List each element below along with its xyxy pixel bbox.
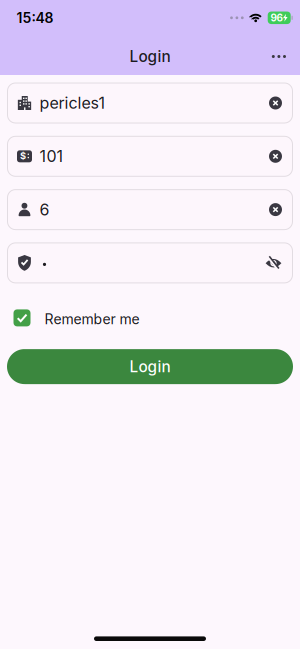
button[interactable]: Remember me — [7, 309, 139, 326]
staticText: 101 — [39, 147, 63, 166]
staticText: $ — [20, 150, 26, 162]
button[interactable]: Clear text — [269, 96, 293, 109]
button[interactable] — [7, 242, 293, 283]
staticText: 15:48 — [16, 9, 53, 26]
staticText: 96 — [270, 12, 282, 24]
button[interactable]: $ — [7, 136, 293, 177]
button[interactable]: Login — [7, 349, 293, 384]
button[interactable]: Clear text — [269, 203, 293, 216]
staticText: Login — [129, 357, 170, 376]
staticText: Login — [129, 47, 170, 66]
button[interactable]: pericles1 — [7, 82, 293, 123]
button[interactable]: Show password — [265, 254, 293, 271]
staticText: Remember me — [44, 311, 139, 327]
button[interactable]: Clear text — [269, 150, 293, 163]
button[interactable]: More options — [272, 41, 300, 71]
staticText: 6 — [39, 200, 49, 219]
staticText: pericles1 — [39, 93, 105, 113]
button[interactable]: 6 — [7, 189, 293, 230]
